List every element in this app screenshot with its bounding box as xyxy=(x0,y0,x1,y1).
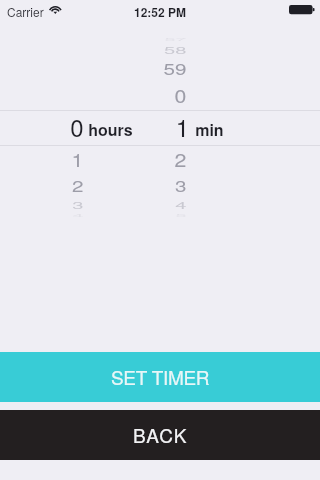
staticText: 58 xyxy=(128,43,186,56)
staticText: 4 xyxy=(128,198,186,211)
staticText: 2 xyxy=(124,145,186,171)
other: Wi-Fi signal xyxy=(49,4,62,15)
button[interactable]: BACK xyxy=(0,410,320,460)
staticText: 3 xyxy=(126,174,186,196)
button[interactable]: 1 xyxy=(0,0,320,240)
button[interactable]: SET TIMER xyxy=(0,352,320,402)
staticText: 2 xyxy=(23,174,83,196)
staticText: BACK xyxy=(133,421,188,448)
staticText: Carrier xyxy=(7,3,44,20)
staticText: hours xyxy=(88,118,133,141)
other: Battery full xyxy=(289,5,315,15)
staticText: 0 xyxy=(13,109,83,143)
staticText: 12:52 PM xyxy=(0,3,320,20)
staticText: 0 xyxy=(124,82,186,108)
staticText: 3 xyxy=(25,198,83,211)
staticText: min xyxy=(195,118,224,141)
staticText: 1 xyxy=(119,109,189,143)
staticText: 1 xyxy=(21,145,83,171)
staticText: 59 xyxy=(126,57,186,79)
staticText: SET TIMER xyxy=(111,363,210,390)
